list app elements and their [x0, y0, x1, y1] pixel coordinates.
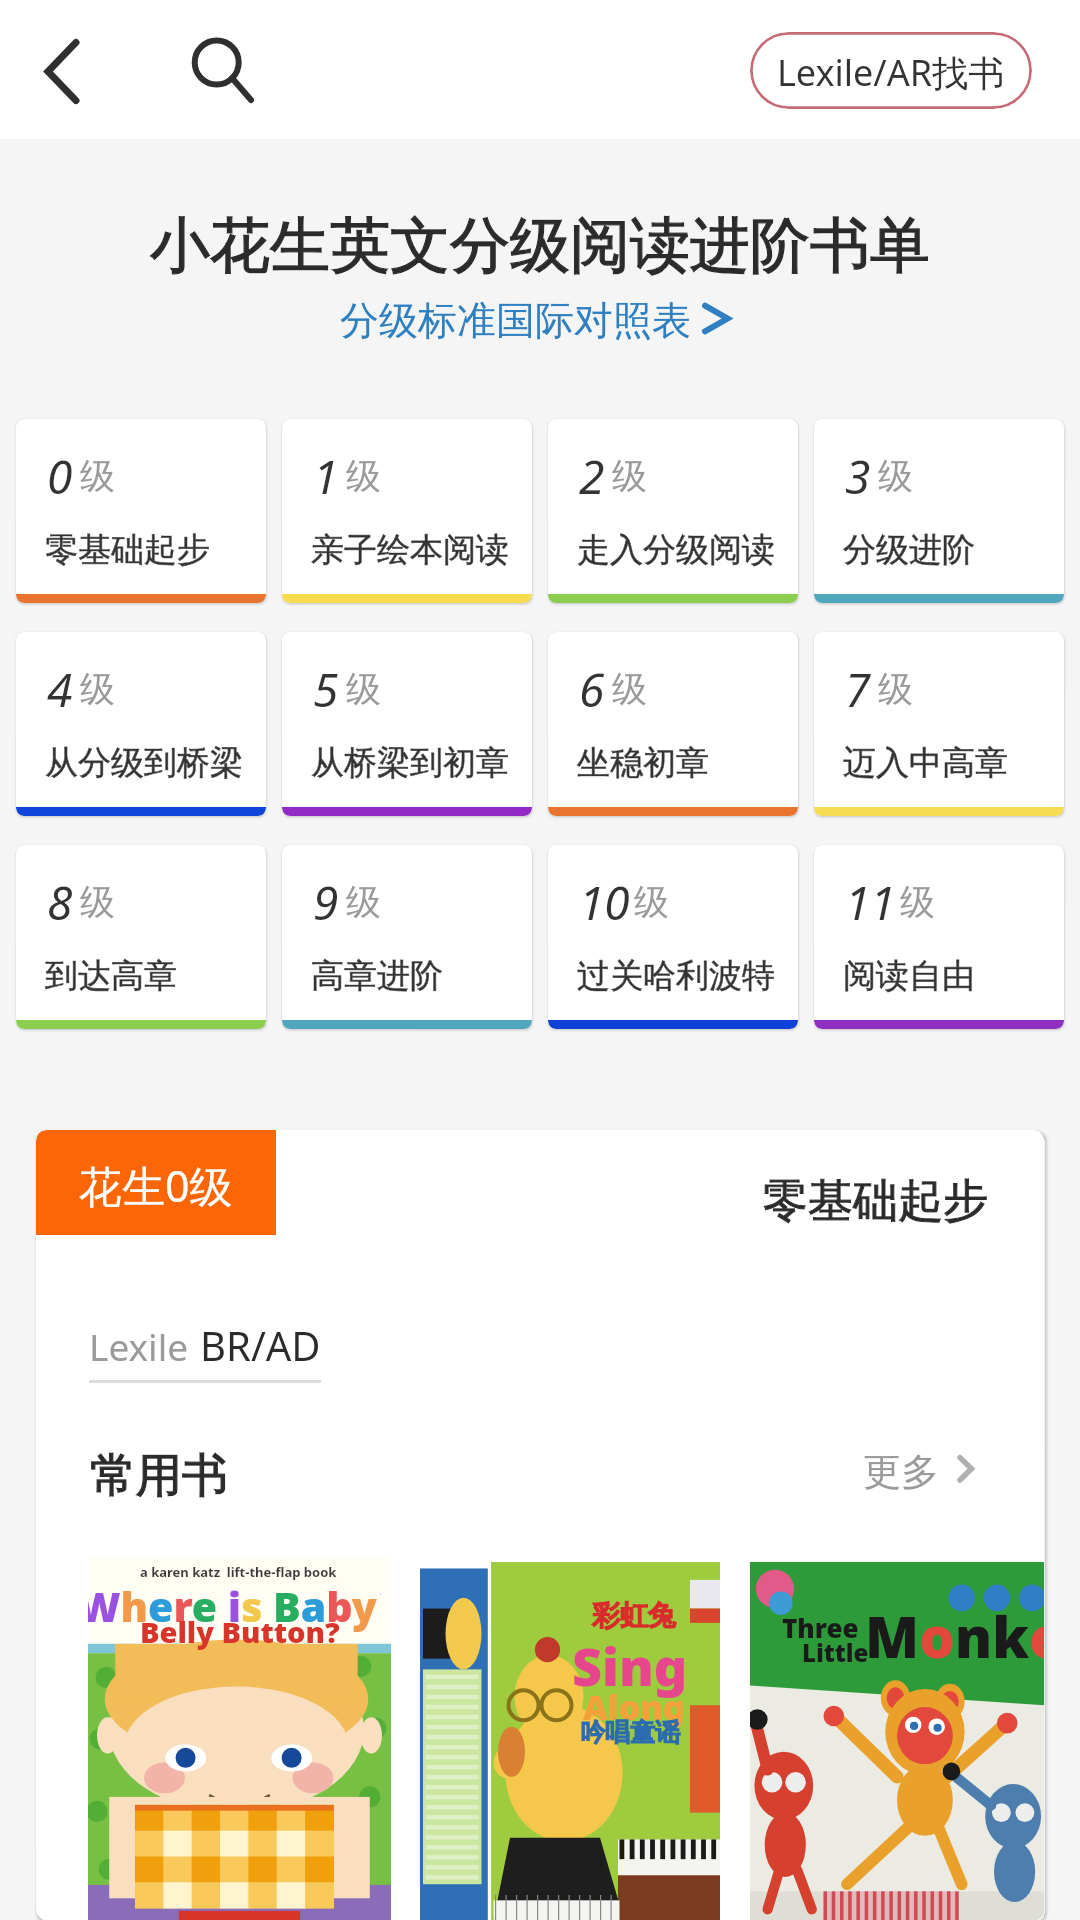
button[interactable]: 4 [16, 632, 266, 816]
staticText: 1 [313, 445, 339, 508]
button[interactable]: 1 [282, 419, 532, 603]
staticText: 级 [634, 880, 669, 924]
staticText: 零基础起步 [45, 529, 210, 571]
staticText: 从桥梁到初章 [311, 742, 509, 784]
staticText: 级 [346, 454, 381, 498]
staticText: 坐稳初章 [577, 742, 709, 784]
staticText: 分级进阶 [843, 529, 975, 571]
staticText: 从分级到桥梁 [45, 742, 243, 784]
button[interactable]: Search [168, 16, 272, 120]
button[interactable]: 11 [814, 845, 1064, 1029]
button[interactable]: 10 [548, 845, 798, 1029]
staticText: 迈入中高章 [843, 742, 1008, 784]
staticText: 级 [346, 667, 381, 711]
staticText: 级 [80, 880, 115, 924]
staticText: 阅读自由 [843, 955, 975, 997]
button[interactable]: 更多 [856, 1440, 932, 1488]
staticText: 彩虹兔 [592, 1598, 676, 1633]
staticText: 小花生英文分级阅读进阶书单 [150, 208, 930, 284]
staticText: 花生0级 [79, 1156, 233, 1215]
staticText: 6 [579, 658, 605, 721]
button[interactable]: Back [14, 19, 114, 121]
staticText: Where is Baby's [88, 1578, 381, 1634]
button[interactable]: 7 [814, 632, 1064, 816]
staticText: 更多 [863, 1448, 939, 1496]
staticText: 3 [845, 445, 871, 508]
button[interactable]: 0 [16, 419, 266, 603]
staticText: 到达高章 [45, 955, 177, 997]
staticText: 级 [346, 880, 381, 924]
staticText: Lexile [89, 1321, 189, 1371]
staticText: 走入分级阅读 [577, 529, 775, 571]
staticText: Belly Button? [140, 1612, 340, 1651]
button[interactable]: 3 [814, 419, 1064, 603]
staticText: 过关哈利波特 [577, 955, 775, 997]
staticText: 高章进阶 [311, 955, 443, 997]
staticText: 高章进阶 [311, 955, 443, 997]
button[interactable]: 花生0级 [36, 1130, 276, 1235]
staticText: a karen katz lift-the-flap book [140, 1563, 337, 1581]
staticText: 阅读自由 [843, 955, 975, 997]
staticText: 常用书 [90, 1447, 228, 1505]
staticText: 级 [80, 454, 115, 498]
staticText: 级 [612, 454, 647, 498]
button[interactable]: Sing Along [420, 1562, 720, 1920]
button[interactable]: 6 [548, 632, 798, 816]
staticText: 11 [845, 871, 896, 934]
staticText: 级 [612, 667, 647, 711]
staticText: Three [782, 1610, 859, 1645]
staticText: 亲子绘本阅读 [311, 529, 509, 571]
staticText: 吟唱童谣 [580, 1717, 680, 1748]
staticText: 从分级到桥梁 [45, 742, 243, 784]
staticText: 零基础起步 [763, 1173, 988, 1230]
button[interactable]: 5 [282, 632, 532, 816]
staticText: 亲子绘本阅读 [311, 529, 509, 571]
staticText: 4 [47, 658, 73, 721]
staticText: 零基础起步 [763, 1173, 988, 1230]
staticText: 从桥梁到初章 [311, 742, 509, 784]
button[interactable]: Where is Baby's Belly Button [88, 1558, 391, 1920]
staticText: 走入分级阅读 [577, 529, 775, 571]
staticText: 8 [47, 871, 73, 934]
staticText: Along [583, 1684, 685, 1730]
staticText: 级 [80, 667, 115, 711]
staticText: 0 [47, 445, 73, 508]
staticText: Lexile/AR找书 [777, 48, 1005, 97]
staticText: 9 [313, 871, 339, 934]
staticText: Sing [572, 1630, 688, 1701]
button[interactable]: 2 [548, 419, 798, 603]
staticText: 到达高章 [45, 955, 177, 997]
staticText: 坐稳初章 [577, 742, 709, 784]
staticText: 分级标准国际对照表 [340, 296, 691, 345]
button[interactable]: 8 [16, 845, 266, 1029]
staticText: 5 [313, 658, 339, 721]
staticText: 迈入中高章 [843, 742, 1008, 784]
staticText: BR/AD [200, 1318, 321, 1372]
staticText: 7 [845, 658, 871, 721]
staticText: Monkeys [865, 1598, 1044, 1674]
staticText: 常用书 [90, 1447, 228, 1505]
staticText: 级 [900, 880, 935, 924]
staticText: 零基础起步 [45, 529, 210, 571]
button[interactable]: Three Little Monkeys [750, 1562, 1044, 1920]
button[interactable]: 9 [282, 845, 532, 1029]
button[interactable]: 分级标准国际对照表 [340, 296, 732, 345]
staticText: 2 [579, 445, 605, 508]
button[interactable]: Lexile/AR找书 [750, 32, 1032, 109]
staticText: 小花生英文分级阅读进阶书单 [150, 208, 930, 284]
staticText: 级 [878, 667, 913, 711]
staticText: 分级进阶 [843, 529, 975, 571]
staticText: 过关哈利波特 [577, 955, 775, 997]
staticText: 级 [878, 454, 913, 498]
staticText: Little [802, 1636, 869, 1669]
staticText: 10 [579, 871, 630, 934]
